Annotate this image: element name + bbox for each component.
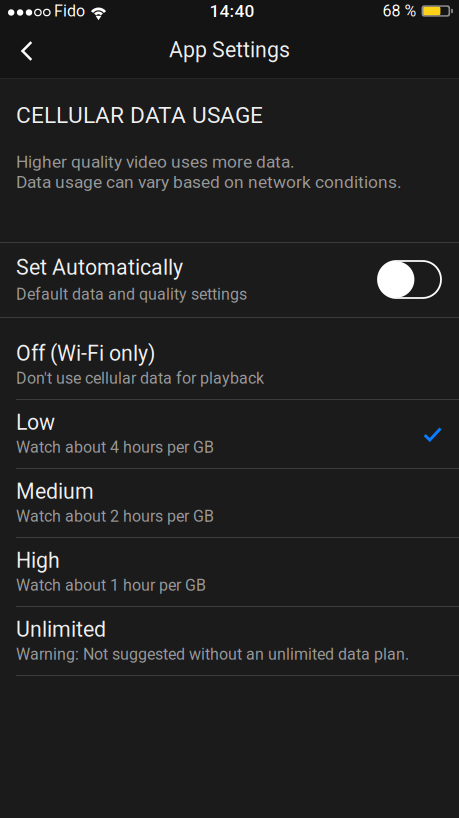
staticText: Default data and quality settings	[16, 285, 247, 304]
button[interactable]: High	[0, 538, 459, 606]
button[interactable]: Medium	[0, 469, 459, 537]
staticText: Set Automatically	[16, 255, 183, 280]
button[interactable]: Back	[0, 21, 52, 78]
staticText: Low	[16, 410, 55, 435]
staticText: High	[16, 548, 60, 573]
staticText: Unlimited	[16, 617, 106, 642]
staticText: 14:40	[209, 1, 254, 21]
button[interactable]: Set Automatically	[0, 243, 459, 317]
staticText: Warning: Not suggested without an unlimi…	[16, 645, 409, 664]
button[interactable]: Off (Wi-Fi only)	[0, 331, 459, 399]
staticText: Watch about 1 hour per GB	[16, 576, 206, 595]
staticText: Fido	[54, 2, 85, 20]
staticText: 68 %	[382, 2, 416, 20]
staticText: Don't use cellular data for playback	[16, 369, 264, 388]
staticText: Medium	[16, 479, 94, 504]
staticText: Higher quality video uses more data.	[16, 152, 295, 172]
staticText: Watch about 2 hours per GB	[16, 507, 214, 526]
button[interactable]: Unlimited	[0, 607, 459, 675]
staticText: Off (Wi-Fi only)	[16, 341, 155, 366]
staticText: Watch about 4 hours per GB	[16, 438, 214, 457]
staticText: CELLULAR DATA USAGE	[16, 102, 263, 129]
staticText: Data usage can vary based on network con…	[16, 172, 402, 192]
staticText: App Settings	[169, 37, 290, 62]
button[interactable]: Low	[0, 400, 459, 468]
